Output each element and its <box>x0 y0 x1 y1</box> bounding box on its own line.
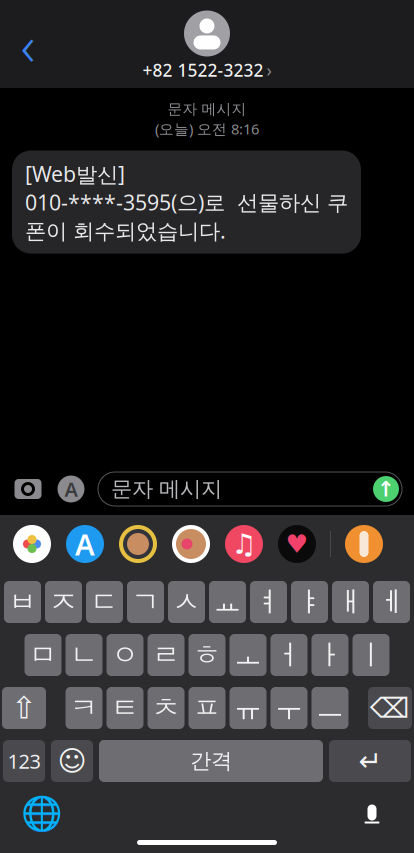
staticText: 123 <box>7 748 40 774</box>
staticText: A <box>75 524 95 563</box>
staticText: 문자 메시지 <box>167 100 246 118</box>
staticText: ‹ <box>20 7 35 81</box>
staticText: ㅅ <box>172 585 200 619</box>
button[interactable]: Camera <box>12 474 44 504</box>
staticText: ㄷ <box>90 585 118 619</box>
button[interactable]: App Store <box>56 474 86 504</box>
staticText: ㅇ <box>111 638 139 672</box>
button[interactable]: ㅈ <box>45 581 82 623</box>
button[interactable]: ㅜ <box>270 687 307 729</box>
button[interactable]: ㅁ <box>24 634 61 676</box>
staticText: ㅛ <box>213 585 241 619</box>
button[interactable]: ㅏ <box>311 634 348 676</box>
button[interactable]: ㅐ <box>332 581 369 623</box>
button[interactable]: ㅑ <box>291 581 328 623</box>
staticText: ㄱ <box>131 585 159 619</box>
staticText: ㅂ <box>8 585 36 619</box>
staticText: ⌫ <box>370 692 410 724</box>
staticText: ㅌ <box>111 691 139 725</box>
staticText: ㅗ <box>234 638 262 672</box>
button[interactable]: Fitness <box>277 524 317 564</box>
staticText: ㅐ <box>336 585 364 619</box>
staticText: ㄹ <box>152 638 180 672</box>
staticText: ↵ <box>358 745 381 777</box>
button[interactable]: ㅅ <box>168 581 205 623</box>
staticText: ☺ <box>57 745 86 777</box>
staticText: ㅡ <box>316 691 344 725</box>
staticText: ㄴ <box>70 638 98 672</box>
button[interactable]: ㅂ <box>4 581 41 623</box>
staticText: ㅜ <box>275 691 303 725</box>
staticText: +82 1522-3232 <box>142 58 263 81</box>
staticText: ㅊ <box>152 691 180 725</box>
staticText: 간격 <box>190 748 232 774</box>
staticText: ㅕ <box>254 585 282 619</box>
staticText: 문자 메시지 <box>111 476 222 502</box>
staticText: ♫ <box>231 528 256 560</box>
button[interactable]: 123 <box>3 740 45 782</box>
button[interactable]: Dictate <box>352 794 392 834</box>
staticText: 🌐 <box>21 795 63 833</box>
button[interactable]: ㄴ <box>65 634 102 676</box>
button[interactable]: ㄷ <box>86 581 123 623</box>
button[interactable]: ㅎ <box>188 634 225 676</box>
button[interactable]: Photos <box>12 524 52 564</box>
staticText: ㅍ <box>193 691 221 725</box>
button[interactable]: ㅍ <box>188 687 225 729</box>
button[interactable]: Back <box>6 18 50 70</box>
button[interactable]: 간격 <box>99 740 323 782</box>
staticText: ↑ <box>377 477 395 501</box>
staticText: ㅈ <box>49 585 77 619</box>
staticText: ㅓ <box>275 638 303 672</box>
button[interactable]: Memoji sticker <box>171 524 211 564</box>
button[interactable]: App Store <box>65 524 105 564</box>
staticText: ㅎ <box>193 638 221 672</box>
button[interactable]: ㅛ <box>209 581 246 623</box>
button[interactable]: ㄱ <box>127 581 164 623</box>
staticText: › <box>266 58 271 81</box>
button[interactable]: Delete <box>368 687 412 729</box>
staticText: ㅏ <box>316 638 344 672</box>
button[interactable]: ㅗ <box>229 634 266 676</box>
staticText: ⇧ <box>11 691 37 725</box>
button[interactable]: ㅊ <box>147 687 184 729</box>
button[interactable]: ㅣ <box>352 634 389 676</box>
button[interactable]: Return <box>329 740 411 782</box>
button[interactable]: Text message field <box>98 472 402 506</box>
button[interactable]: ㅇ <box>106 634 143 676</box>
staticText: ㅔ <box>377 585 405 619</box>
staticText: ㅠ <box>234 691 262 725</box>
button[interactable]: ㅡ <box>311 687 348 729</box>
button[interactable]: ㅠ <box>229 687 266 729</box>
staticText: ㅑ <box>295 585 323 619</box>
staticText: (오늘) 오전 8:16 <box>155 119 259 138</box>
button[interactable]: ㅓ <box>270 634 307 676</box>
button[interactable]: ㅔ <box>373 581 410 623</box>
staticText: [Web발신] 010-****-3595(으)로 선물하신 쿠 폰이 회수되었… <box>25 159 348 245</box>
staticText: ㅋ <box>70 691 98 725</box>
staticText: ♥ <box>285 530 308 558</box>
button[interactable]: Memoji <box>118 524 158 564</box>
button[interactable]: Next keyboard <box>22 794 62 834</box>
button[interactable]: ㅕ <box>250 581 287 623</box>
staticText: ㅁ <box>29 638 57 672</box>
staticText: ㅣ <box>357 638 385 672</box>
button[interactable]: GarageBand <box>344 524 384 564</box>
button[interactable]: Contact details <box>142 6 271 81</box>
button[interactable]: ㄹ <box>147 634 184 676</box>
button[interactable]: ㅌ <box>106 687 143 729</box>
button[interactable]: Emoji <box>51 740 93 782</box>
staticText: A <box>64 476 77 502</box>
button[interactable]: Music <box>224 524 264 564</box>
button[interactable]: Shift <box>2 687 46 729</box>
button[interactable]: ㅋ <box>65 687 102 729</box>
